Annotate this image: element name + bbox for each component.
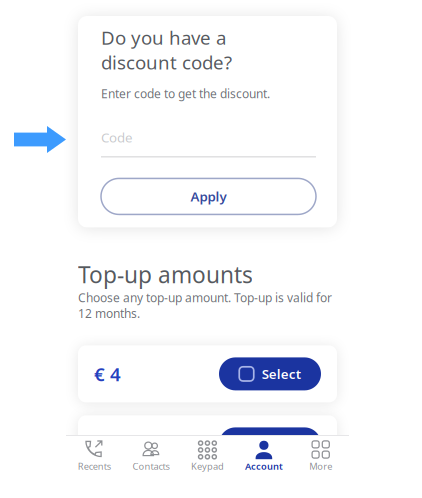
staticText: Do you have a discount code? xyxy=(101,25,232,75)
button[interactable]: Select xyxy=(219,357,321,390)
staticText: Top-up amounts xyxy=(78,259,253,289)
staticText: Recents xyxy=(78,460,111,472)
staticText: Apply xyxy=(190,188,226,205)
staticText: Enter code to get the discount. xyxy=(101,86,270,101)
button[interactable]: Account xyxy=(236,436,292,476)
staticText: Contacts xyxy=(132,460,169,472)
button[interactable]: More xyxy=(292,436,349,476)
staticText: More xyxy=(309,460,332,472)
button[interactable]: Keypad xyxy=(179,436,236,476)
staticText: Code xyxy=(101,128,133,146)
staticText: Account xyxy=(245,460,283,472)
staticText: Select xyxy=(262,365,301,383)
staticText: Keypad xyxy=(191,460,224,472)
staticText: € 8 xyxy=(94,431,121,456)
button[interactable]: Select xyxy=(219,427,321,460)
button[interactable]: Apply xyxy=(101,178,316,214)
button[interactable]: Contacts xyxy=(123,436,179,476)
button[interactable]: Recents xyxy=(66,436,123,476)
staticText: € 4 xyxy=(94,361,121,386)
staticText: Choose any top-up amount. Top-up is vali… xyxy=(78,289,332,321)
staticText: Select xyxy=(262,435,301,453)
